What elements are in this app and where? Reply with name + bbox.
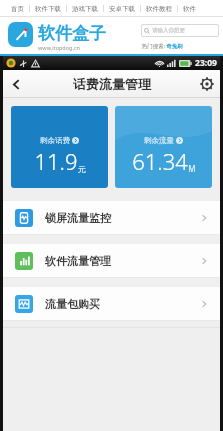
button[interactable]: 返回 (3, 71, 29, 97)
staticText: 请输入你想要 (152, 27, 185, 34)
staticText: 剩余话费 (40, 136, 70, 145)
staticText: 锁屏流量监控 (45, 211, 111, 225)
button[interactable]: 锁屏流量监控 (3, 200, 220, 235)
staticText: 首页 (11, 5, 24, 13)
staticText: 热门搜索: (141, 42, 166, 50)
button[interactable]: Logo (8, 22, 33, 47)
button[interactable]: 剩余话费 (11, 106, 108, 188)
staticText: 23:09 (195, 57, 217, 69)
staticText: 游戏下载 (72, 5, 98, 13)
button[interactable]: 安卓下载 (104, 5, 140, 13)
button[interactable]: 游戏下载 (67, 5, 103, 13)
button[interactable]: 软件教程 (141, 5, 177, 13)
staticText: 安卓下载 (109, 5, 135, 13)
staticText: 11.9 (34, 146, 78, 176)
button[interactable]: 流量包购买 (3, 286, 220, 321)
staticText: 软件教程 (146, 5, 172, 13)
staticText: 软件流量管理 (45, 254, 111, 268)
button[interactable]: 软件 (178, 5, 201, 13)
staticText: 软件下载 (35, 5, 61, 13)
staticText: 奇兔刷 (166, 43, 183, 50)
staticText: www.itopdog.cn (38, 44, 80, 51)
staticText: 流量包购买 (45, 297, 100, 311)
staticText: 软件盒子 (38, 23, 106, 44)
staticText: M (188, 163, 196, 174)
staticText: 61.34 (132, 146, 188, 176)
button[interactable]: 软件流量管理 (3, 243, 220, 278)
button[interactable]: 剩余流量 (115, 106, 212, 188)
button[interactable]: 设置 (194, 71, 220, 97)
button[interactable]: 请输入你想要 (141, 24, 219, 37)
button[interactable]: 首页 (6, 5, 29, 13)
button[interactable]: 软件下载 (30, 5, 66, 13)
staticText: 话费流量管理 (73, 76, 151, 92)
staticText: 软件 (183, 5, 196, 13)
staticText: 剩余流量 (144, 136, 174, 145)
staticText: 元 (78, 164, 86, 174)
